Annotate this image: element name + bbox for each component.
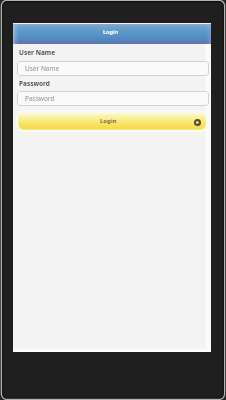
staticText: Login [100, 117, 117, 125]
staticText: Login [103, 28, 119, 35]
button[interactable]: Login [13, 24, 211, 44]
button[interactable]: Login [18, 112, 206, 130]
button[interactable]: User Name [17, 61, 209, 76]
button[interactable]: Submit [194, 119, 201, 126]
staticText: Password [19, 79, 50, 88]
staticText: User Name [25, 64, 60, 73]
staticText: User Name [19, 48, 56, 57]
button[interactable]: Password [17, 91, 209, 106]
staticText: Password [25, 94, 55, 103]
